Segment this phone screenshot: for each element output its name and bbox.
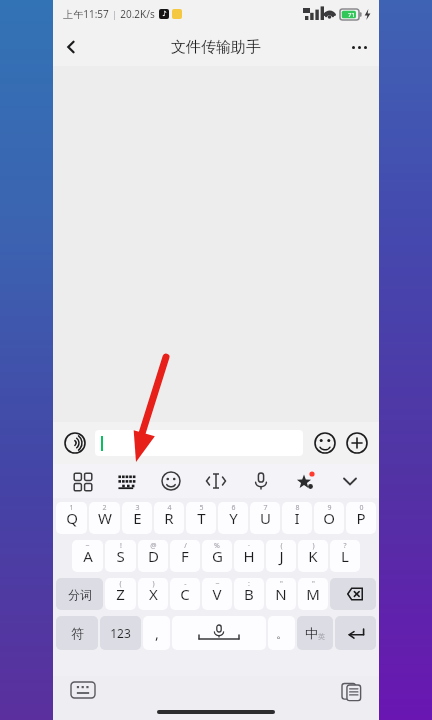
button[interactable]: 符 bbox=[56, 616, 98, 650]
button[interactable]: 123 bbox=[100, 616, 141, 650]
staticText: ! bbox=[120, 541, 122, 551]
button[interactable]: U bbox=[250, 502, 280, 534]
staticText: ~ bbox=[215, 579, 220, 589]
staticText: I bbox=[294, 508, 300, 528]
button[interactable]: P bbox=[346, 502, 376, 534]
staticText: N bbox=[275, 584, 287, 604]
button[interactable]: E bbox=[122, 502, 152, 534]
button[interactable]: Stickers bbox=[290, 466, 320, 496]
staticText: " bbox=[280, 579, 283, 589]
staticText: V bbox=[212, 584, 222, 604]
staticText: B bbox=[244, 584, 254, 604]
button[interactable]: L bbox=[330, 540, 360, 572]
button[interactable]: K bbox=[298, 540, 328, 572]
staticText: K bbox=[308, 546, 318, 566]
staticText: 123 bbox=[110, 625, 131, 641]
staticText: J bbox=[279, 546, 284, 566]
staticText: A bbox=[83, 546, 93, 566]
button[interactable]: Switch keyboard bbox=[69, 680, 97, 700]
staticText: 1 bbox=[69, 503, 74, 513]
staticText: D bbox=[148, 546, 159, 566]
staticText: 文件传输助手 bbox=[171, 38, 261, 57]
button[interactable]: Back bbox=[53, 29, 89, 65]
button[interactable]: F bbox=[170, 540, 200, 572]
button[interactable]: Microphone bbox=[246, 466, 276, 496]
button[interactable]: R bbox=[154, 502, 184, 534]
button[interactable]: D bbox=[138, 540, 168, 572]
button[interactable]: X bbox=[138, 578, 168, 610]
button[interactable]: Collapse keyboard bbox=[335, 466, 365, 496]
button[interactable]: A bbox=[72, 540, 103, 572]
staticText: 2 bbox=[102, 503, 107, 513]
button[interactable]: Enter bbox=[335, 616, 376, 650]
staticText: ( bbox=[119, 579, 122, 589]
staticText: % bbox=[214, 541, 220, 551]
button[interactable]: Keyboard bbox=[112, 466, 142, 496]
staticText: Q bbox=[66, 508, 78, 528]
staticText: 0 bbox=[359, 503, 364, 513]
button[interactable]: Y bbox=[218, 502, 248, 534]
staticText: 中 bbox=[305, 625, 318, 641]
button[interactable]: M bbox=[298, 578, 328, 610]
button[interactable]: More options bbox=[339, 28, 379, 66]
button[interactable]: Apps bbox=[67, 466, 97, 496]
button[interactable]: Voice input bbox=[61, 429, 89, 457]
staticText: ) bbox=[152, 579, 155, 589]
staticText: G bbox=[212, 546, 223, 566]
staticText: ♪ bbox=[162, 10, 167, 18]
button[interactable]: 中 bbox=[297, 616, 333, 650]
staticText: 分词 bbox=[68, 587, 92, 602]
staticText: S bbox=[116, 546, 125, 566]
button[interactable]: Z bbox=[105, 578, 136, 610]
button[interactable]: H bbox=[234, 540, 264, 572]
staticText: 符 bbox=[71, 625, 84, 641]
staticText: Y bbox=[229, 508, 238, 528]
staticText: | bbox=[112, 8, 117, 20]
staticText: · bbox=[248, 541, 250, 551]
button[interactable] bbox=[95, 430, 303, 456]
button[interactable]: Emoji bbox=[311, 429, 339, 457]
staticText: P bbox=[356, 508, 366, 528]
staticText: 8 bbox=[295, 503, 300, 513]
button[interactable]: More functions bbox=[343, 429, 371, 457]
staticText: 71 bbox=[348, 11, 355, 19]
button[interactable]: C bbox=[170, 578, 200, 610]
button[interactable]: Emoji bbox=[156, 466, 186, 496]
staticText: " bbox=[312, 579, 315, 589]
staticText: O bbox=[323, 508, 335, 528]
button[interactable]: O bbox=[314, 502, 344, 534]
staticText: W bbox=[98, 508, 112, 528]
button[interactable]: Q bbox=[56, 502, 87, 534]
staticText: , bbox=[155, 624, 159, 643]
button[interactable]: V bbox=[202, 578, 232, 610]
staticText: ? bbox=[343, 541, 347, 551]
button[interactable]: T bbox=[186, 502, 216, 534]
button[interactable]: , bbox=[143, 616, 170, 650]
staticText: 3 bbox=[135, 503, 140, 513]
button[interactable]: N bbox=[266, 578, 296, 610]
button[interactable]: 分词 bbox=[56, 578, 103, 610]
button[interactable]: Text cursor bbox=[201, 466, 231, 496]
staticText: U bbox=[260, 508, 271, 528]
staticText: C bbox=[180, 584, 190, 604]
staticText: R bbox=[164, 508, 174, 528]
button[interactable]: 。 bbox=[268, 616, 295, 650]
button[interactable]: G bbox=[202, 540, 232, 572]
staticText: 7 bbox=[263, 503, 268, 513]
staticText: F bbox=[181, 546, 189, 566]
button[interactable]: Space bbox=[172, 616, 266, 650]
button[interactable]: Backspace bbox=[330, 578, 376, 610]
button[interactable]: J bbox=[266, 540, 296, 572]
staticText: - bbox=[184, 579, 187, 589]
staticText: / bbox=[184, 541, 187, 551]
button[interactable]: B bbox=[234, 578, 264, 610]
button[interactable]: I bbox=[282, 502, 312, 534]
staticText: 20.2K/s bbox=[120, 7, 155, 21]
button[interactable]: W bbox=[89, 502, 120, 534]
staticText: 5 bbox=[199, 503, 204, 513]
button[interactable]: S bbox=[105, 540, 136, 572]
staticText: L bbox=[341, 546, 349, 566]
staticText: 4 bbox=[167, 503, 172, 513]
staticText: ~ bbox=[85, 541, 90, 551]
button[interactable]: Clipboard bbox=[339, 679, 363, 703]
